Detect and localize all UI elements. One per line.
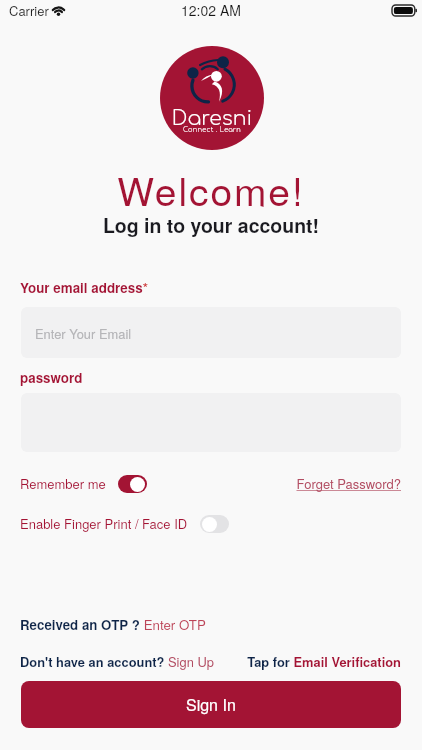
button[interactable]: Received an OTP ? Enter OTP <box>20 615 206 634</box>
staticText: Your email address* <box>20 278 148 297</box>
staticText: Remember me <box>20 474 106 493</box>
staticText: Enter Your Email <box>35 324 132 342</box>
staticText: Connect . Learn <box>160 126 264 133</box>
staticText: Daresni <box>160 107 264 130</box>
staticText: Enable Finger Print / Face ID <box>20 514 188 533</box>
staticText: 12:02 AM <box>0 0 422 20</box>
button[interactable]: Remember me <box>20 474 147 493</box>
button[interactable]: Sign In <box>21 681 401 728</box>
button[interactable]: Forget Password? <box>0 474 401 493</box>
staticText: Log in to your account! <box>0 211 422 239</box>
staticText: Welcome! <box>0 161 422 217</box>
button[interactable]: Switch on <box>118 475 147 493</box>
staticText: Carrier <box>9 1 49 20</box>
button[interactable]: Don't have an account? Sign Up <box>20 652 214 671</box>
staticText: Sign In <box>186 693 236 716</box>
button[interactable]: Switch off <box>200 515 229 533</box>
other: Wi-Fi <box>51 4 66 15</box>
other: Battery <box>392 5 417 16</box>
button[interactable]: Enable Finger Print / Face ID <box>20 514 229 533</box>
staticText: password <box>20 368 83 387</box>
button[interactable]: Enter Your Email <box>21 307 401 358</box>
button[interactable]: Tap for Email Verification <box>0 652 401 670</box>
